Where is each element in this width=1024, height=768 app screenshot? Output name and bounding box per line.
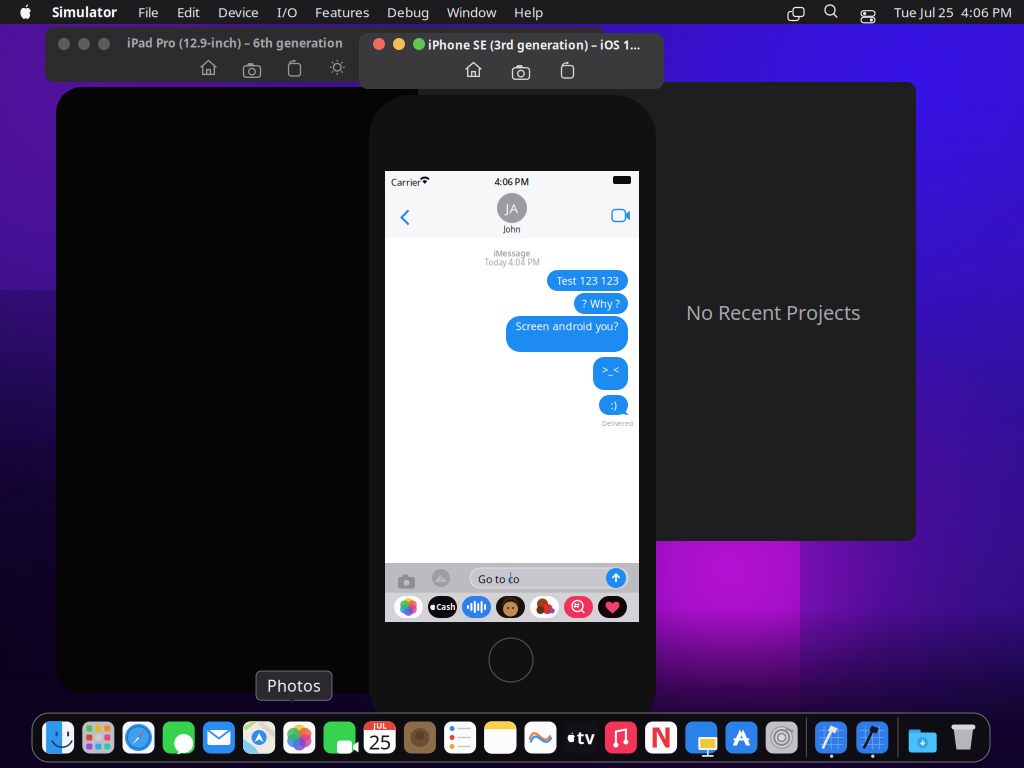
staticText: No Recent Projects xyxy=(686,299,861,326)
button[interactable]: Xcode Beta xyxy=(856,717,888,757)
staticText: 4:06 PM xyxy=(494,175,529,188)
button[interactable]: FaceTime xyxy=(604,199,638,232)
button[interactable]: Mission Control xyxy=(778,5,809,19)
button[interactable]: I/O xyxy=(268,0,306,24)
button[interactable]: Screenshot xyxy=(243,59,261,75)
staticText: Today 4:04 PM xyxy=(484,257,539,268)
staticText: JUL xyxy=(373,720,386,731)
button[interactable]: Send xyxy=(603,565,629,591)
button[interactable]: #images xyxy=(564,596,593,618)
button[interactable]: FaceTime xyxy=(323,717,355,757)
button[interactable]: Notes xyxy=(484,717,516,757)
staticText: 25 xyxy=(369,728,391,755)
staticText: Window xyxy=(447,3,496,21)
staticText: Delivered xyxy=(602,419,633,428)
staticText: Cash xyxy=(436,602,455,612)
staticText: Edit xyxy=(177,3,200,21)
button[interactable]: App Store xyxy=(725,717,757,757)
button[interactable]: Appearance xyxy=(329,59,346,76)
button[interactable]: Features xyxy=(306,0,378,24)
button[interactable]: Safari xyxy=(122,717,154,757)
button[interactable]: Music xyxy=(605,717,637,757)
button[interactable]: System Settings xyxy=(766,717,798,757)
staticText: JA xyxy=(505,199,518,217)
button[interactable]: Contacts xyxy=(404,717,436,757)
button[interactable]: Back xyxy=(391,201,419,234)
staticText: Features xyxy=(315,3,369,21)
staticText: tv xyxy=(577,726,595,749)
button[interactable]: Control Center xyxy=(854,5,882,19)
button[interactable]: Help xyxy=(505,0,552,24)
button[interactable]: Xcode xyxy=(815,717,847,757)
staticText: Debug xyxy=(387,3,429,21)
staticText: I/O xyxy=(277,3,297,21)
button[interactable]: Launchpad xyxy=(82,717,114,757)
staticText: Test 123 123 xyxy=(556,273,618,288)
button[interactable]: Photos xyxy=(394,596,423,618)
staticText: Simulator xyxy=(52,3,117,21)
staticText: Go to co xyxy=(478,572,519,586)
staticText: ? Why ? xyxy=(582,296,620,311)
staticText: Device xyxy=(218,3,259,21)
button[interactable]: Window xyxy=(438,0,505,24)
staticText: Carrier xyxy=(391,176,421,188)
staticText: Tue Jul 25 xyxy=(894,3,954,21)
staticText: Photos xyxy=(267,675,321,696)
button[interactable]: Freeform xyxy=(524,717,556,757)
button[interactable]: iMessage Apps xyxy=(428,565,454,591)
button[interactable]: Digital Touch xyxy=(462,596,491,618)
button[interactable]: Messages xyxy=(163,717,195,757)
button[interactable]: Maps xyxy=(243,717,275,757)
button[interactable]: Reminders xyxy=(444,717,476,757)
staticText: iPad Pro (12.9-inch) – 6th generation xyxy=(127,35,343,51)
button[interactable]: Trash xyxy=(947,717,980,757)
staticText: John xyxy=(503,224,520,235)
button[interactable]: Screenshot xyxy=(512,61,530,77)
button[interactable]: Home xyxy=(465,61,482,78)
button[interactable]: Photos xyxy=(283,717,315,757)
button[interactable]: Love xyxy=(598,596,627,618)
button[interactable]: Apple TV xyxy=(565,717,597,757)
button[interactable]: Stickers xyxy=(530,596,559,618)
staticText: Help xyxy=(514,3,543,21)
button[interactable]: Mail xyxy=(203,717,235,757)
staticText: 4:06 PM xyxy=(961,3,1012,21)
staticText: Screen android you? xyxy=(515,319,618,333)
button[interactable]: News xyxy=(645,717,677,757)
button[interactable]: Keynote xyxy=(685,717,717,757)
button[interactable]: Home xyxy=(200,59,217,76)
button[interactable]: Memoji Stickers xyxy=(496,596,525,618)
staticText: >_< xyxy=(602,362,619,377)
button[interactable]: Record xyxy=(560,61,576,78)
button[interactable]: Edit xyxy=(168,0,209,24)
button[interactable]: File xyxy=(129,0,168,24)
staticText: :) xyxy=(610,398,616,412)
button[interactable]: Camera xyxy=(393,567,420,592)
button[interactable]: Device xyxy=(209,0,268,24)
button[interactable]: Calendar xyxy=(364,717,396,757)
staticText: File xyxy=(138,3,159,21)
button[interactable]: Apple Cash xyxy=(428,596,457,618)
button[interactable]: Downloads xyxy=(907,717,939,757)
staticText: iMessage xyxy=(493,248,530,259)
button[interactable]: Rotate Left xyxy=(287,59,303,76)
button[interactable]: Spotlight Search xyxy=(818,5,845,19)
button[interactable]: Finder xyxy=(42,717,74,757)
button[interactable]: Debug xyxy=(378,0,438,24)
staticText: iPhone SE (3rd generation) – iOS 1… xyxy=(428,37,640,53)
button[interactable]: Tue Jul 25 xyxy=(894,3,1012,21)
